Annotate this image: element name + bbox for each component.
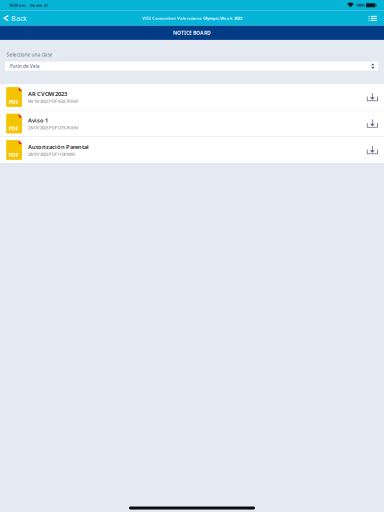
staticText: 24/01/2023 PDF (1.00 MB) (28, 151, 75, 157)
staticText: PDF (9, 124, 19, 132)
staticText: Back (11, 13, 27, 23)
staticText: 100% (356, 3, 365, 8)
staticText: Vie ene. 27 (30, 3, 48, 8)
staticText: PDF (9, 98, 19, 106)
staticText: 10:29 a.m. (9, 3, 27, 8)
button[interactable]: Patín de Vela (5, 62, 378, 71)
staticText: Patín de Vela (10, 63, 40, 69)
button[interactable]: PDF (0, 110, 384, 136)
staticText: PDF (9, 151, 19, 159)
staticText: 23/01/2023 PDF (273.76 KB) (28, 125, 78, 130)
staticText: VIII Comunitat Valenciana Olympic Week 2… (142, 15, 242, 21)
staticText: 06/10/2022 PDF (632.70 KB) (28, 98, 78, 104)
staticText: AR CVOW 2023 (28, 90, 67, 98)
button[interactable]: Menu (363, 11, 384, 26)
button[interactable]: PDF (0, 84, 384, 110)
staticText: Autorización Parental (28, 143, 89, 151)
staticText: Aviso 1 (28, 116, 48, 124)
staticText: NOTICE BOARD (173, 29, 211, 36)
button[interactable]: PDF (0, 137, 384, 163)
button[interactable]: Back (0, 11, 31, 26)
staticText: Seleccione una clase (6, 51, 52, 58)
